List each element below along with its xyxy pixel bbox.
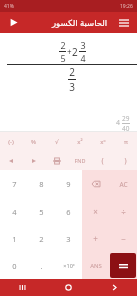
staticText: 5 bbox=[60, 52, 66, 64]
button[interactable]: ( bbox=[91, 151, 114, 170]
staticText: 2 bbox=[72, 45, 78, 59]
staticText: % bbox=[31, 138, 36, 146]
button[interactable]: x² bbox=[68, 132, 91, 151]
button[interactable]: 7 bbox=[0, 170, 28, 198]
staticText: 4 bbox=[116, 118, 121, 128]
button[interactable]: ANS bbox=[82, 252, 109, 279]
staticText: x² bbox=[77, 138, 83, 146]
staticText: 0 bbox=[12, 261, 17, 271]
button[interactable]: Home bbox=[45, 279, 91, 296]
staticText: ANS bbox=[90, 262, 102, 270]
button[interactable]: Equals bbox=[110, 253, 136, 278]
staticText: 4 bbox=[80, 52, 86, 64]
button[interactable]: √ bbox=[45, 132, 68, 151]
button[interactable]: Menu bbox=[115, 14, 132, 31]
button[interactable]: Play bbox=[5, 14, 22, 31]
staticText: ÷ bbox=[121, 206, 126, 217]
button[interactable]: FND bbox=[68, 151, 91, 170]
button[interactable]: 9 bbox=[55, 170, 82, 198]
staticText: 6 bbox=[66, 207, 71, 217]
button[interactable]: π bbox=[114, 132, 137, 151]
staticText: 2 bbox=[39, 234, 44, 244]
button[interactable]: ) bbox=[114, 151, 137, 170]
staticText: 5 bbox=[39, 207, 44, 217]
staticText: 4 bbox=[12, 207, 17, 217]
button[interactable]: Right bbox=[22, 151, 45, 170]
button[interactable]: 3 bbox=[55, 225, 82, 252]
button[interactable]: Backspace bbox=[82, 170, 109, 198]
button[interactable]: 4 bbox=[0, 198, 28, 225]
staticText: الحاسبة الكسور bbox=[52, 17, 108, 29]
staticText: − bbox=[121, 233, 126, 244]
staticText: 41% bbox=[4, 3, 14, 10]
staticText: + bbox=[93, 233, 98, 244]
staticText: 3 bbox=[69, 80, 75, 94]
staticText: ×10ˣ bbox=[63, 262, 75, 269]
button[interactable]: Back bbox=[91, 279, 137, 296]
staticText: 29 bbox=[122, 114, 130, 123]
button[interactable]: Fraction bbox=[45, 151, 68, 170]
button[interactable]: Recent apps bbox=[0, 279, 45, 296]
staticText: 9 bbox=[66, 179, 71, 189]
staticText: 3 bbox=[80, 39, 86, 51]
button[interactable]: 2 bbox=[28, 225, 55, 252]
staticText: 2 bbox=[69, 65, 75, 79]
button[interactable]: 6 bbox=[55, 198, 82, 225]
button[interactable]: 8 bbox=[28, 170, 55, 198]
staticText: . bbox=[40, 261, 43, 271]
button[interactable]: 1 bbox=[0, 225, 28, 252]
button[interactable]: 5 bbox=[28, 198, 55, 225]
staticText: 1 bbox=[12, 234, 17, 244]
staticText: 7 bbox=[12, 179, 17, 189]
staticText: π bbox=[124, 138, 128, 146]
button[interactable]: AC bbox=[109, 170, 137, 198]
button[interactable]: (-) bbox=[0, 132, 22, 151]
staticText: + bbox=[67, 46, 72, 57]
staticText: 19:26 bbox=[120, 3, 133, 10]
staticText: ) bbox=[124, 156, 127, 166]
button[interactable]: ×10ˣ bbox=[55, 252, 82, 279]
button[interactable]: Left bbox=[0, 151, 22, 170]
staticText: 2 bbox=[60, 39, 66, 51]
staticText: √ bbox=[55, 138, 59, 145]
staticText: ( bbox=[101, 156, 104, 166]
staticText: FND bbox=[74, 157, 86, 164]
staticText: 8 bbox=[39, 179, 44, 189]
staticText: 3 bbox=[66, 234, 71, 244]
staticText: x° bbox=[100, 138, 106, 146]
staticText: × bbox=[93, 206, 98, 217]
button[interactable]: 0 bbox=[0, 252, 28, 279]
button[interactable]: ÷ bbox=[109, 198, 137, 225]
staticText: (-) bbox=[8, 138, 14, 146]
button[interactable]: % bbox=[22, 132, 45, 151]
staticText: AC bbox=[119, 180, 128, 189]
button[interactable]: x° bbox=[91, 132, 114, 151]
button[interactable]: × bbox=[82, 198, 109, 225]
staticText: 40 bbox=[122, 124, 130, 131]
button[interactable]: + bbox=[82, 225, 109, 252]
